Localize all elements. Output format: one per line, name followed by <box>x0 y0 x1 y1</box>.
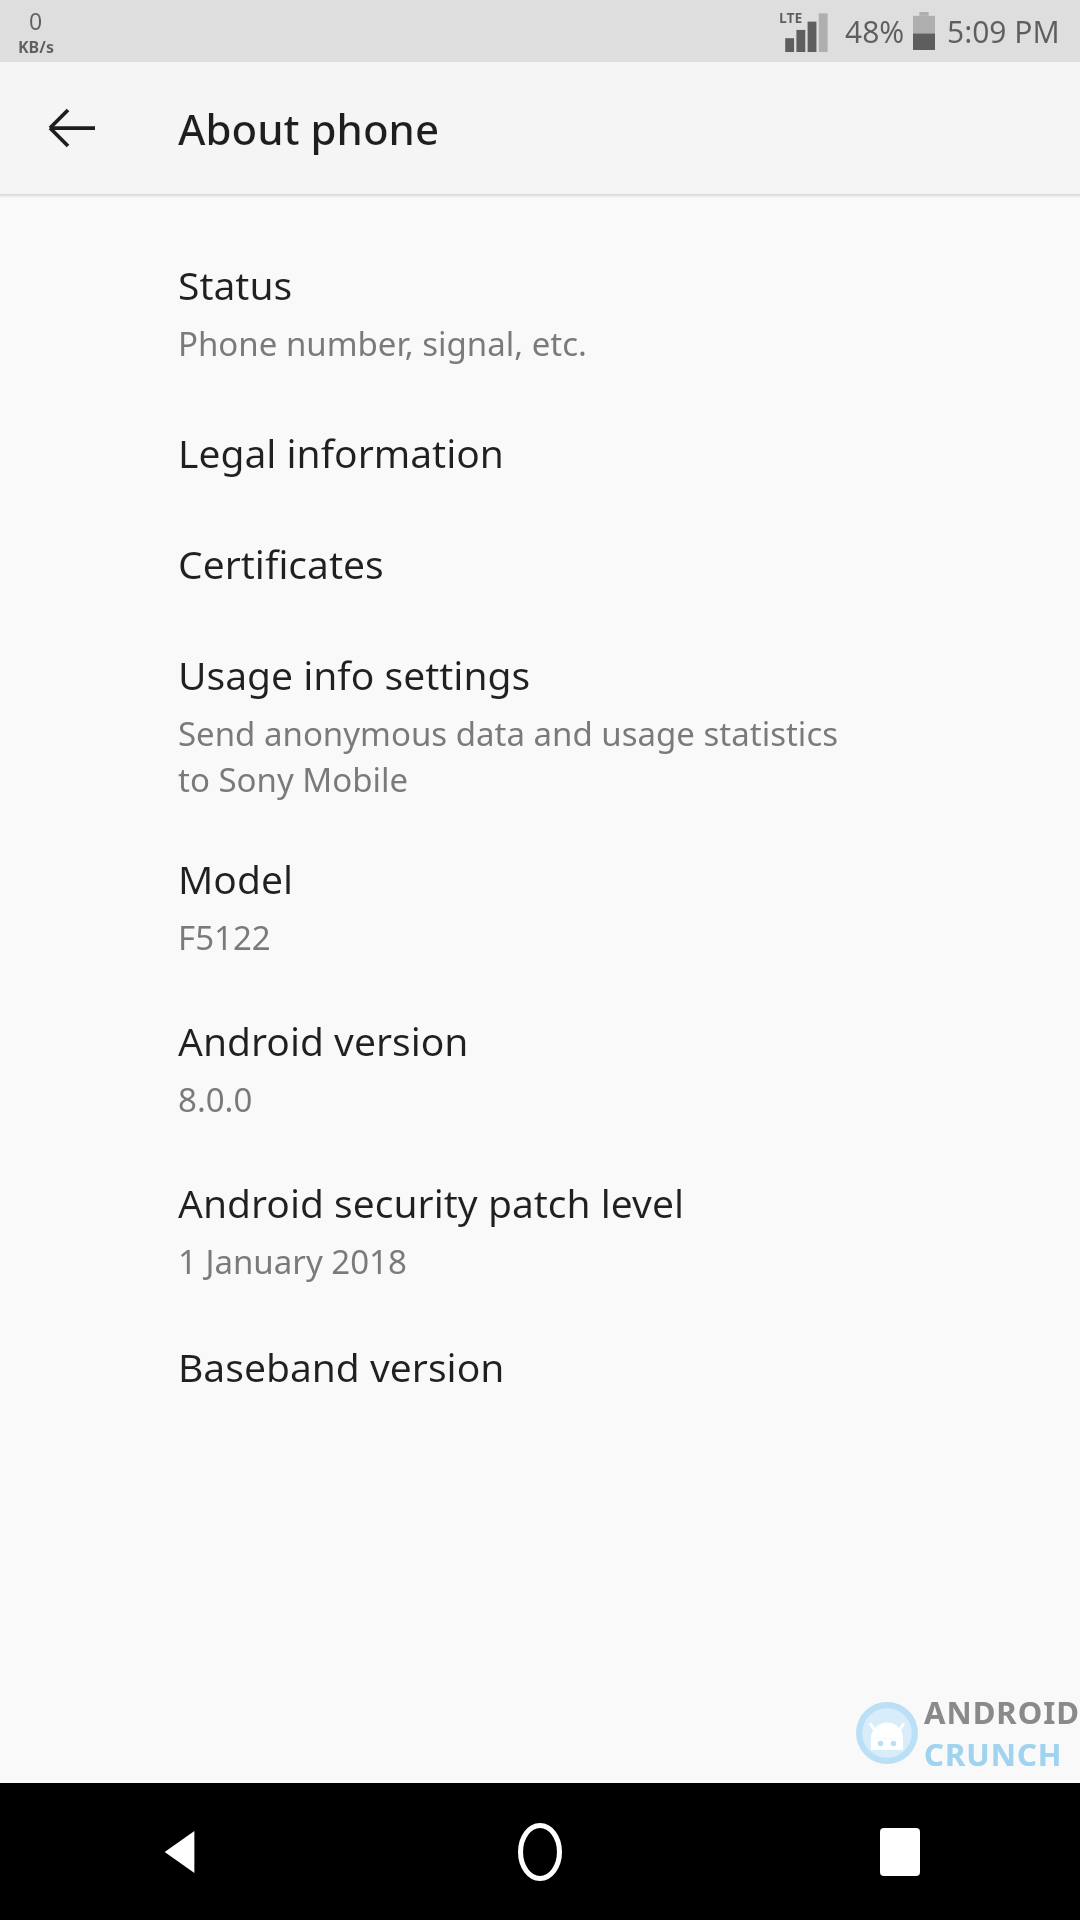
button[interactable]: Android version <box>0 960 1080 1122</box>
staticText: 5:09 PM <box>947 11 1060 52</box>
staticText: 1 January 2018 <box>178 1239 407 1284</box>
staticText: LTE <box>779 8 803 27</box>
button[interactable]: Recent apps <box>720 1783 1080 1920</box>
button[interactable]: Back <box>0 1783 360 1920</box>
staticText: 48% <box>845 11 905 52</box>
staticText: Phone number, signal, etc. <box>178 321 587 366</box>
staticText: 0 <box>29 5 43 36</box>
staticText: Baseband version <box>178 1340 505 1393</box>
button[interactable]: Android security patch level <box>0 1122 1080 1284</box>
button[interactable]: Baseband version <box>0 1284 1080 1393</box>
staticText: Model <box>178 852 294 905</box>
button[interactable]: Certificates <box>0 479 1080 590</box>
button[interactable]: Usage info settings <box>0 590 1080 802</box>
staticText: Send anonymous data and usage statistics… <box>178 711 839 802</box>
staticText: Usage info settings <box>178 648 531 701</box>
button[interactable]: Back <box>30 86 114 170</box>
staticText: About phone <box>178 100 440 157</box>
staticText: Android security patch level <box>178 1176 684 1229</box>
staticText: Android version <box>178 1014 469 1067</box>
staticText: KB/s <box>18 36 54 58</box>
button[interactable]: Model <box>0 802 1080 960</box>
button[interactable]: Home <box>360 1783 720 1920</box>
staticText: Legal information <box>178 426 504 479</box>
staticText: F5122 <box>178 915 271 960</box>
button[interactable]: Legal information <box>0 366 1080 479</box>
staticText: Status <box>178 258 293 311</box>
staticText: Certificates <box>178 537 384 590</box>
staticText: CRUNCH <box>924 1733 1063 1775</box>
staticText: ANDROID <box>924 1691 1080 1733</box>
button[interactable]: Status <box>0 206 1080 366</box>
staticText: 8.0.0 <box>178 1077 253 1122</box>
